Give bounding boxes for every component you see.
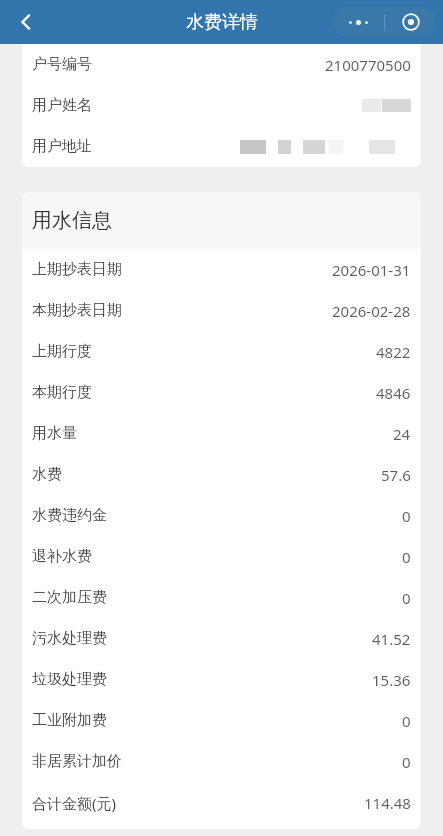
staticText: 114.48 [364, 793, 411, 813]
staticText: 水费 [32, 465, 62, 484]
staticText: 水费详情 [186, 11, 258, 34]
staticText: 户号编号 [32, 55, 92, 74]
button[interactable]: 用户姓名 [32, 85, 411, 126]
staticText: 用水量 [32, 424, 77, 443]
button[interactable]: 上期抄表日期 [32, 249, 411, 290]
staticText: 退补水费 [32, 547, 92, 566]
staticText: 污水处理费 [32, 629, 107, 648]
staticText: 用户姓名 [32, 96, 92, 115]
button[interactable]: 用水量 [32, 413, 411, 454]
button[interactable]: Back [6, 2, 46, 42]
button[interactable]: 本期行度 [32, 372, 411, 413]
staticText: 57.6 [381, 465, 411, 485]
staticText: 0 [402, 711, 411, 731]
staticText: 15.36 [372, 670, 411, 690]
staticText: 41.52 [372, 629, 411, 649]
button[interactable]: 本期抄表日期 [32, 290, 411, 331]
button[interactable]: 非居累计加价 [32, 741, 411, 782]
button[interactable]: 用户地址 [32, 126, 411, 167]
staticText: 水费违约金 [32, 506, 107, 525]
staticText: 24 [393, 424, 411, 444]
button[interactable]: 工业附加费 [32, 700, 411, 741]
staticText: 非居累计加价 [32, 752, 122, 771]
staticText: 合计金额(元) [32, 793, 117, 813]
button[interactable]: 污水处理费 [32, 618, 411, 659]
button[interactable]: 上期行度 [32, 331, 411, 372]
button[interactable]: 退补水费 [32, 536, 411, 577]
button[interactable]: More options [333, 7, 384, 37]
button[interactable]: 二次加压费 [32, 577, 411, 618]
staticText: 4822 [376, 342, 411, 362]
staticText: 上期行度 [32, 342, 92, 361]
staticText: 本期抄表日期 [32, 301, 122, 320]
staticText: 用水信息 [32, 208, 112, 233]
staticText: 用户地址 [32, 137, 92, 156]
staticText: 0 [402, 588, 411, 608]
staticText: 0 [402, 506, 411, 526]
staticText: 垃圾处理费 [32, 670, 107, 689]
staticText: 2026-02-28 [332, 301, 411, 321]
staticText: 2100770500 [325, 55, 411, 75]
button[interactable]: 水费违约金 [32, 495, 411, 536]
staticText: 二次加压费 [32, 588, 107, 607]
button[interactable]: 户号编号 [32, 44, 411, 85]
staticText: 2026-01-31 [332, 260, 411, 280]
staticText: 0 [402, 547, 411, 567]
staticText: 上期抄表日期 [32, 260, 122, 279]
button[interactable]: 合计金额(元) [32, 782, 411, 823]
staticText: 本期行度 [32, 383, 92, 402]
button[interactable]: Close [385, 7, 436, 37]
staticText: 0 [402, 752, 411, 772]
staticText: 工业附加费 [32, 711, 107, 730]
button[interactable]: 水费 [32, 454, 411, 495]
staticText: 4846 [376, 383, 411, 403]
button[interactable]: 垃圾处理费 [32, 659, 411, 700]
